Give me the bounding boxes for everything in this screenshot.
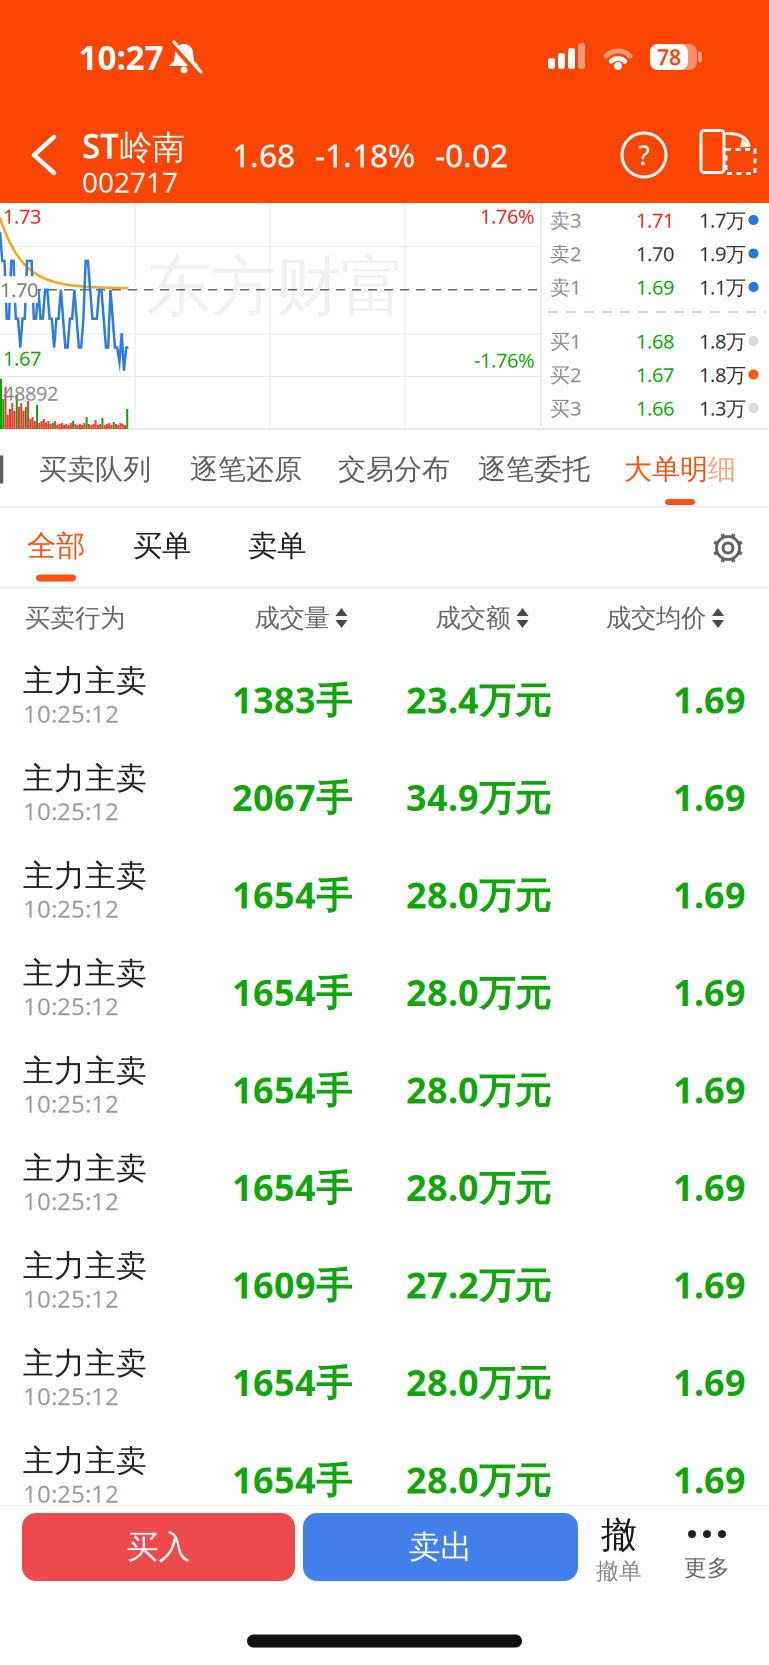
staticText: 主力主卖 <box>23 1150 147 1187</box>
staticText: 78 <box>657 43 681 71</box>
staticText: 1.69 <box>673 1261 746 1308</box>
staticText: 28.0万元 <box>406 1163 551 1211</box>
staticText: 卖出 <box>408 1527 472 1567</box>
staticText: 1.9万 <box>699 240 746 267</box>
staticText: 逐笔委托 <box>478 452 590 487</box>
staticText: 1.70 <box>0 276 38 303</box>
staticText: 002717 <box>82 163 178 201</box>
staticText: 1.67 <box>636 361 674 388</box>
staticText: 撤 <box>601 1513 637 1557</box>
staticText: -1.76% <box>474 347 535 373</box>
staticText: 全部 <box>27 528 85 564</box>
staticText: 买卖队列 <box>39 452 151 487</box>
staticText: 2067手 <box>232 773 352 821</box>
button[interactable]: Help <box>620 131 668 179</box>
staticText: 10:25:12 <box>23 1185 119 1217</box>
staticText: 28.0万元 <box>406 1456 551 1503</box>
staticText: 主力主卖 <box>23 857 147 895</box>
button[interactable]: 逐笔还原 <box>190 452 302 487</box>
staticText: 买3 <box>550 395 581 421</box>
button[interactable]: 成交额 <box>435 602 528 633</box>
staticText: 1.70 <box>636 240 674 267</box>
staticText: 成交额 <box>435 602 510 633</box>
staticText: 1654手 <box>232 871 352 918</box>
staticText: 成交量 <box>254 602 329 633</box>
staticText: 买单 <box>133 528 191 564</box>
button[interactable]: 全部 <box>27 528 85 564</box>
staticText: -0.02 <box>435 134 508 176</box>
staticText: 1.69 <box>673 773 746 821</box>
button[interactable]: 买单 <box>133 528 191 564</box>
staticText: 买入 <box>126 1527 190 1567</box>
staticText: ? <box>638 137 650 173</box>
staticText: 买1 <box>550 328 581 354</box>
staticText: 主力主卖 <box>23 760 147 797</box>
staticText: 主力主卖 <box>23 955 147 992</box>
staticText: 1.69 <box>673 871 746 918</box>
button[interactable]: 买入 <box>22 1513 295 1581</box>
button[interactable]: 逐笔委托 <box>478 452 590 487</box>
staticText: 交易分布 <box>338 452 450 487</box>
button[interactable]: 撤单 <box>596 1513 642 1585</box>
staticText: 1.67 <box>3 345 41 371</box>
button[interactable]: More <box>684 1530 730 1582</box>
staticText: 1.68 <box>636 328 674 354</box>
staticText: 1654手 <box>232 1066 352 1113</box>
staticText: 28.0万元 <box>406 1358 551 1406</box>
button[interactable]: 成交均价 <box>606 602 724 633</box>
staticText: 1.1万 <box>699 274 746 300</box>
staticText: 1.66 <box>636 395 674 421</box>
staticText: 1.68 <box>232 134 295 176</box>
staticText: 主力主卖 <box>23 1442 147 1480</box>
staticText: 1.69 <box>673 1358 746 1406</box>
staticText: 1.69 <box>673 676 746 723</box>
button[interactable]: 交易分布 <box>338 452 450 487</box>
staticText: 1.76% <box>480 203 535 229</box>
staticText: 10:25:12 <box>23 990 119 1022</box>
staticText: 东方财富 <box>146 247 406 327</box>
button[interactable]: 买卖队列 <box>39 452 151 487</box>
button[interactable]: Rotate to landscape <box>697 126 759 182</box>
staticText: 1.69 <box>673 1456 746 1503</box>
staticText: 48892 <box>3 380 58 406</box>
staticText: 主力主卖 <box>23 1052 147 1090</box>
staticText: 1654手 <box>232 968 352 1016</box>
staticText: 卖单 <box>248 528 306 564</box>
staticText: 卖1 <box>550 274 581 300</box>
button[interactable]: Settings <box>710 530 746 566</box>
staticText: 卖2 <box>550 240 581 267</box>
staticText: 主力主卖 <box>23 662 147 700</box>
staticText: 主力主卖 <box>23 1247 147 1285</box>
staticText: 撤单 <box>596 1557 642 1585</box>
staticText: 10:25:12 <box>23 893 119 924</box>
staticText: 28.0万元 <box>406 968 551 1016</box>
staticText: 买卖行为 <box>25 602 125 633</box>
staticText: 10:25:12 <box>23 698 119 729</box>
staticText: 10:25:12 <box>23 1088 119 1119</box>
staticText: 1609手 <box>232 1261 352 1308</box>
button[interactable]: 成交量 <box>254 602 347 633</box>
staticText: 28.0万元 <box>406 1066 551 1113</box>
button[interactable]: 卖单 <box>248 528 306 564</box>
staticText: 主力主卖 <box>23 1345 147 1382</box>
staticText: 逐笔还原 <box>190 452 302 487</box>
staticText: 10:27 <box>78 35 163 79</box>
staticText: ST岭南 <box>82 124 185 168</box>
staticText: 买2 <box>550 361 581 388</box>
staticText: 成交均价 <box>606 602 706 633</box>
button[interactable]: 卖出 <box>303 1513 578 1581</box>
staticText: 10:25:12 <box>23 795 119 827</box>
staticText: 10:25:12 <box>23 1380 119 1412</box>
staticText: 34.9万元 <box>406 773 551 821</box>
staticText: 1.8万 <box>699 328 746 354</box>
staticText: 卖3 <box>550 207 581 233</box>
staticText: 1.69 <box>673 968 746 1016</box>
staticText: 1383手 <box>232 676 352 723</box>
staticText: 10:25:12 <box>23 1283 119 1314</box>
staticText: 1654手 <box>232 1456 352 1503</box>
staticText: 1654手 <box>232 1358 352 1406</box>
button[interactable]: Back <box>30 133 58 177</box>
button[interactable]: 大单明 <box>624 452 736 487</box>
staticText: 1.69 <box>636 274 674 300</box>
staticText: 28.0万元 <box>406 871 551 918</box>
